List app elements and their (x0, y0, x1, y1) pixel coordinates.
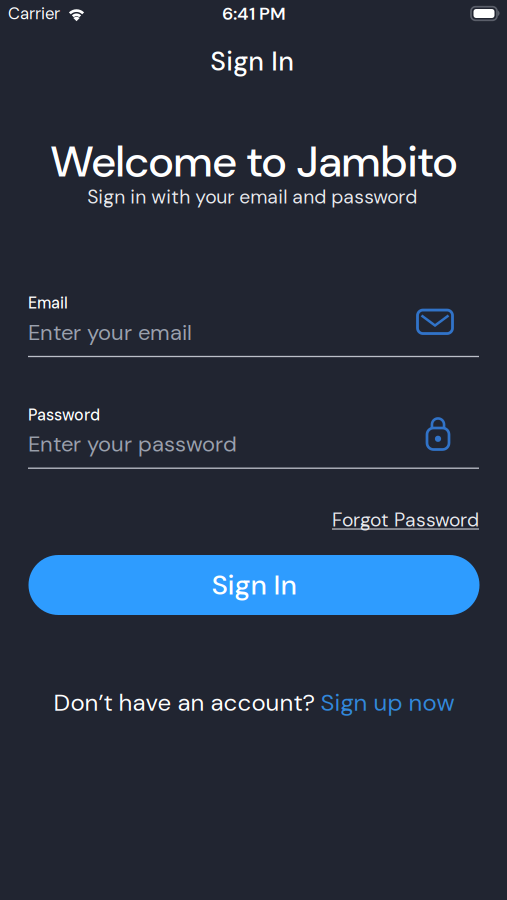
staticText: Email (28, 293, 68, 313)
staticText: Sign In (210, 44, 294, 79)
staticText: Welcome to Jambito (50, 133, 457, 190)
staticText: Forgot Password (332, 507, 479, 533)
staticText: Password (28, 405, 100, 425)
staticText: Sign In (211, 567, 296, 603)
staticText: Don’t have an account? (53, 687, 315, 718)
button[interactable]: Enter your password (28, 417, 479, 468)
button[interactable]: Don’t have an account? (53, 687, 454, 718)
button[interactable]: Enter your email (28, 310, 479, 357)
staticText: Sign in with your email and password (87, 184, 417, 209)
button[interactable]: Forgot Password (332, 507, 479, 533)
staticText: Sign up now (320, 687, 454, 718)
staticText: 6:41 PM (222, 2, 286, 25)
staticText: Carrier (8, 3, 60, 24)
staticText: Enter your password (28, 430, 237, 458)
staticText: Enter your email (28, 318, 192, 347)
button[interactable]: Sign In (28, 555, 479, 615)
